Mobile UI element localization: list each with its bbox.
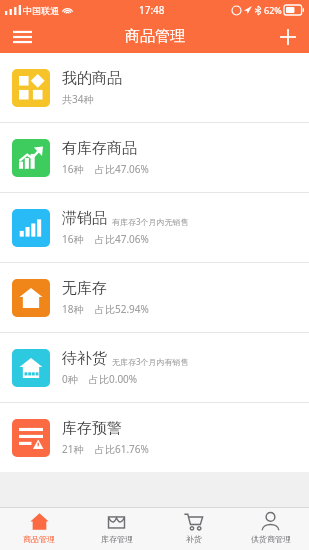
staticText: 待补货 <box>62 349 107 368</box>
staticText: 中国联通 <box>23 5 59 16</box>
staticText: 21种 <box>62 442 84 456</box>
button[interactable]: 我的商品 <box>0 53 309 122</box>
button[interactable]: 库存管理 <box>78 508 155 550</box>
staticText: 商品管理 <box>125 27 185 46</box>
staticText: 16种 <box>62 162 84 176</box>
staticText: 17:48 <box>139 3 165 17</box>
staticText: 商品管理 <box>23 534 55 544</box>
staticText: 无库存3个月内有销售 <box>112 356 189 367</box>
staticText: 占比47.06% <box>95 232 149 246</box>
button[interactable]: 供货商管理 <box>232 508 309 550</box>
staticText: 我的商品 <box>62 69 122 88</box>
staticText: 滞销品 <box>62 209 107 228</box>
staticText: 库存管理 <box>101 534 133 544</box>
staticText: 占比0.00% <box>89 372 138 386</box>
button[interactable]: Add <box>267 20 309 53</box>
staticText: 库存预警 <box>62 419 122 438</box>
button[interactable]: 商品管理 <box>0 508 78 550</box>
button[interactable]: 补货 <box>155 508 232 550</box>
staticText: 占比47.06% <box>95 162 149 176</box>
staticText: 共34种 <box>62 92 94 106</box>
button[interactable]: 库存预警 <box>0 403 309 472</box>
button[interactable]: 无库存 <box>0 263 309 332</box>
staticText: 供货商管理 <box>251 534 291 544</box>
staticText: 占比61.76% <box>95 442 149 456</box>
staticText: 无库存 <box>62 279 107 298</box>
button[interactable]: Menu <box>0 20 44 53</box>
button[interactable]: 有库存商品 <box>0 123 309 192</box>
staticText: 62% <box>264 4 282 16</box>
button[interactable]: 待补货 <box>0 333 309 402</box>
staticText: 占比52.94% <box>95 302 149 316</box>
staticText: 有库存3个月内无销售 <box>112 216 189 227</box>
staticText: 有库存商品 <box>62 139 137 158</box>
staticText: 16种 <box>62 232 84 246</box>
staticText: 18种 <box>62 302 84 316</box>
staticText: 0种 <box>62 372 78 386</box>
staticText: 补货 <box>186 534 202 544</box>
button[interactable]: 滞销品 <box>0 193 309 262</box>
